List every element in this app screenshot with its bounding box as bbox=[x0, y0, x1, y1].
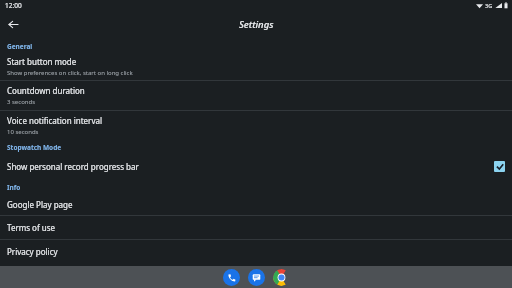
staticText: General bbox=[7, 42, 33, 51]
button[interactable]: Start button mode bbox=[0, 53, 512, 80]
button[interactable]: Messages bbox=[248, 269, 265, 286]
button[interactable]: Countdown duration bbox=[0, 81, 512, 110]
staticText: Info bbox=[7, 183, 21, 192]
button[interactable]: Google Play page bbox=[0, 194, 512, 215]
staticText: Privacy policy bbox=[7, 246, 58, 257]
staticText: Countdown duration bbox=[7, 85, 85, 96]
button[interactable]: Chrome bbox=[273, 269, 290, 286]
button[interactable]: Show personal record progress bar bbox=[0, 154, 512, 178]
button[interactable]: Terms of use bbox=[0, 216, 512, 239]
button[interactable]: Phone bbox=[223, 269, 240, 286]
staticText: 12:00 bbox=[5, 1, 22, 10]
staticText: Stopwatch Mode bbox=[7, 143, 62, 152]
staticText: 3G bbox=[485, 2, 493, 9]
staticText: Show preferences on click, start on long… bbox=[7, 69, 133, 77]
staticText: Voice notification interval bbox=[7, 115, 102, 126]
staticText: 3 seconds bbox=[7, 98, 36, 106]
staticText: Google Play page bbox=[7, 199, 73, 210]
button[interactable]: Back bbox=[3, 14, 24, 35]
staticText: Start button mode bbox=[7, 56, 77, 67]
staticText: Show personal record progress bar bbox=[7, 161, 139, 172]
staticText: 10 seconds bbox=[7, 128, 39, 136]
staticText: Terms of use bbox=[7, 222, 56, 233]
button[interactable]: Privacy policy bbox=[0, 240, 512, 263]
staticText: Settings bbox=[239, 18, 274, 31]
button[interactable]: Voice notification interval bbox=[0, 111, 512, 139]
